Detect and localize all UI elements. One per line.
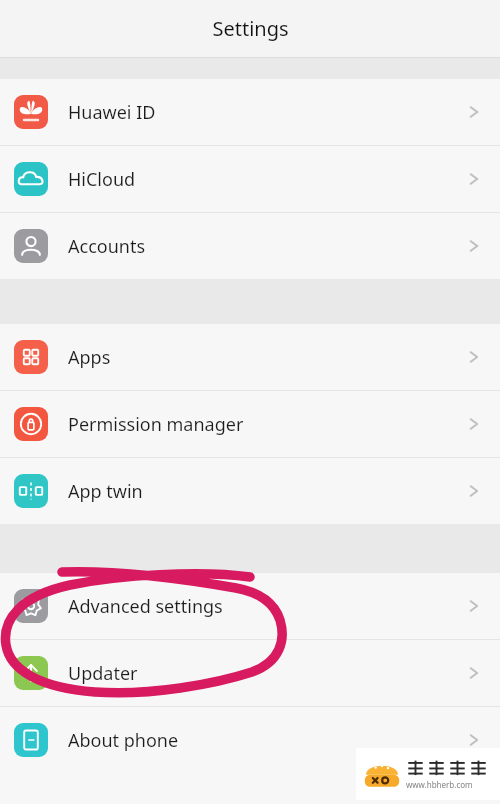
staticText: Advanced settings	[68, 594, 223, 619]
button[interactable]: Apps	[0, 324, 500, 390]
button[interactable]: Permission manager	[0, 391, 500, 457]
button[interactable]: Accounts	[0, 213, 500, 279]
staticText: Apps	[68, 345, 111, 370]
staticText: Accounts	[68, 234, 146, 259]
button[interactable]: HiCloud	[0, 146, 500, 212]
button[interactable]: About phone	[0, 707, 500, 773]
button[interactable]: App twin	[0, 458, 500, 524]
staticText: HiCloud	[68, 167, 136, 192]
staticText: www.hbherb.com	[406, 779, 473, 790]
button[interactable]: Huawei ID	[0, 79, 500, 145]
button[interactable]: Updater	[0, 640, 500, 706]
staticText: Updater	[68, 661, 138, 686]
staticText: Settings	[212, 15, 289, 42]
staticText: Huawei ID	[68, 100, 156, 125]
button[interactable]: Advanced settings	[0, 573, 500, 639]
staticText: About phone	[68, 728, 179, 753]
staticText: App twin	[68, 479, 143, 504]
staticText: Permission manager	[68, 412, 244, 437]
